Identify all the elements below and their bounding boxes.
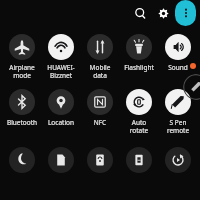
button[interactable]: NFC — [81, 89, 119, 127]
button[interactable]: Edit buttons — [183, 74, 200, 100]
staticText: Flashlight — [120, 63, 158, 72]
button[interactable]: More options — [175, 0, 196, 26]
staticText: NFC — [81, 118, 119, 127]
staticText: S Pen remote — [159, 118, 197, 135]
button[interactable]: HUAWEI- Bizznet — [42, 34, 80, 80]
staticText: Sound — [159, 63, 197, 72]
staticText: Airplane mode — [3, 63, 41, 80]
button[interactable]: Sound — [159, 34, 197, 72]
staticText: Bluetooth — [3, 118, 41, 127]
button[interactable]: LOCK — [81, 147, 119, 173]
button[interactable]: S Pen remote — [159, 89, 197, 135]
staticText: Mobile data — [81, 63, 119, 80]
staticText: Auto rotate — [120, 118, 158, 135]
button[interactable]: Settings — [153, 3, 173, 23]
button[interactable]: MOON — [3, 147, 41, 173]
button[interactable]: Airplane mode — [3, 34, 41, 80]
staticText: Location — [42, 118, 80, 127]
button[interactable]: BOOK — [120, 147, 158, 173]
staticText: HUAWEI- Bizznet — [42, 63, 80, 80]
button[interactable]: Location — [42, 89, 80, 127]
button[interactable]: Flashlight — [120, 34, 158, 72]
button[interactable]: Search — [130, 3, 150, 23]
button[interactable]: SYNC — [159, 147, 197, 173]
button[interactable]: DOC — [42, 147, 80, 173]
button[interactable]: Bluetooth — [3, 89, 41, 127]
button[interactable]: Auto rotate — [120, 89, 158, 135]
button[interactable]: Mobile data — [81, 34, 119, 80]
